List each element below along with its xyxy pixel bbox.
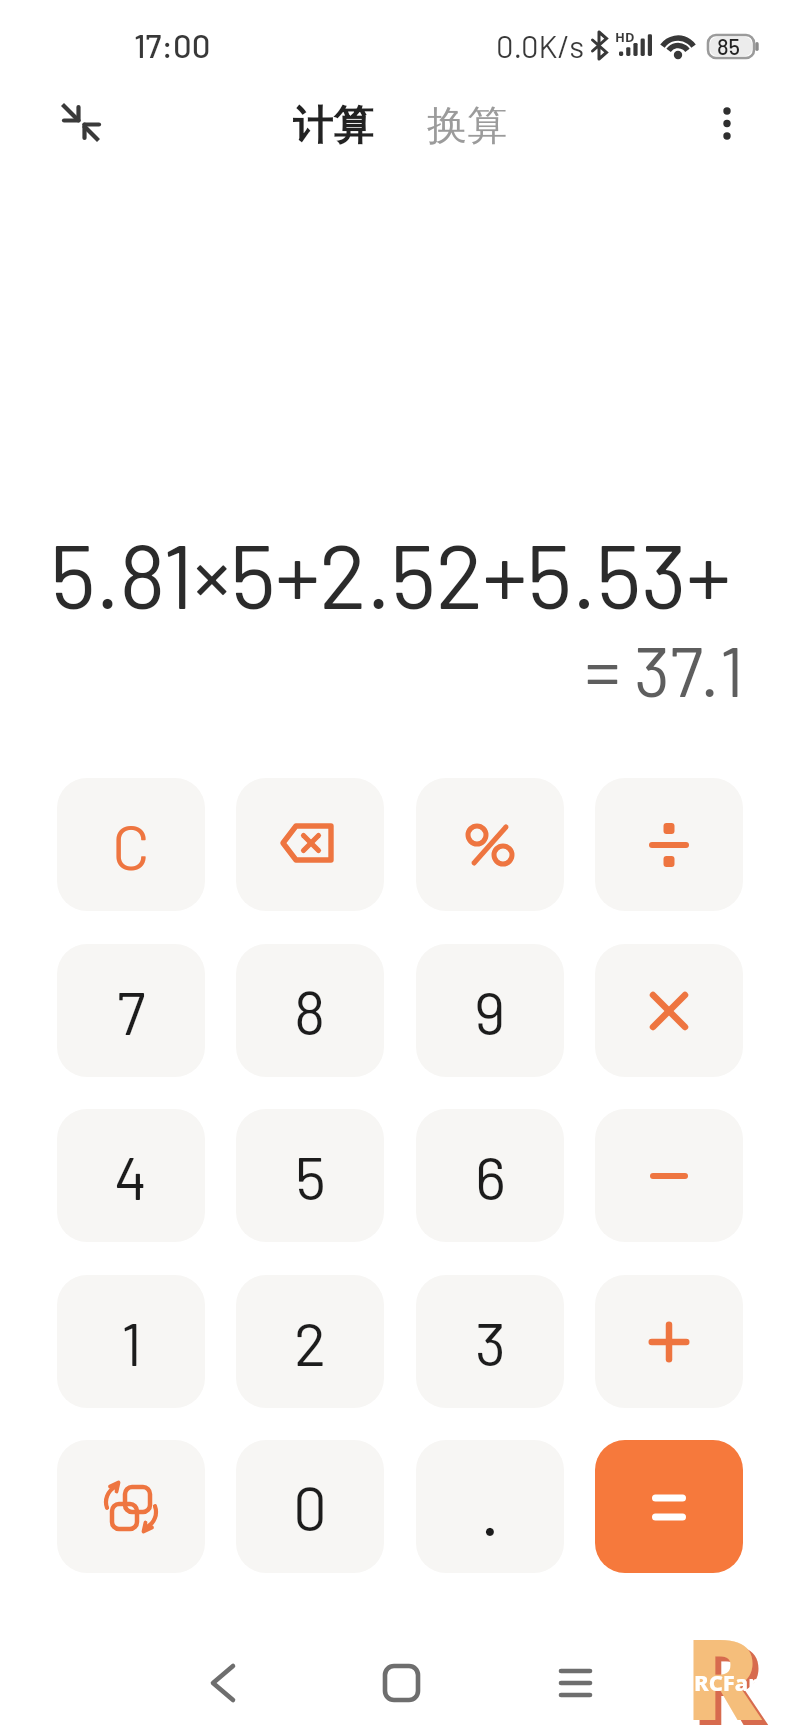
button[interactable] — [595, 1440, 743, 1573]
button[interactable]: 3 — [416, 1275, 564, 1408]
button[interactable]: 7 — [57, 944, 205, 1077]
button[interactable] — [595, 944, 743, 1077]
staticText: 1 — [121, 1306, 142, 1378]
button[interactable] — [50, 95, 110, 155]
button[interactable]: 0 — [236, 1440, 384, 1573]
button[interactable] — [705, 100, 750, 150]
button[interactable]: 8 — [236, 944, 384, 1077]
staticText: 8 — [294, 975, 326, 1047]
staticText: = 37.1 — [404, 627, 744, 717]
staticText: 0 — [293, 1471, 327, 1543]
button[interactable] — [360, 1653, 440, 1713]
staticText: RCFans — [694, 1667, 774, 1697]
staticText: 85 — [717, 33, 741, 59]
button[interactable]: 1 — [57, 1275, 205, 1408]
staticText: 7 — [117, 975, 146, 1047]
button[interactable]: 计算 — [293, 100, 373, 150]
staticText: 计算 — [293, 100, 373, 150]
staticText: 5 — [295, 1140, 326, 1212]
staticText: 4 — [114, 1140, 148, 1212]
staticText: HD — [615, 28, 635, 46]
staticText: R — [685, 1600, 761, 1733]
button[interactable]: 4 — [57, 1109, 205, 1242]
button[interactable]: 2 — [236, 1275, 384, 1408]
staticText: C — [112, 808, 150, 882]
staticText: 3 — [475, 1306, 506, 1378]
button[interactable] — [535, 1653, 615, 1713]
staticText: 17:00 — [134, 25, 211, 65]
staticText: 5.81×5+2.52+5.53+ — [50, 520, 731, 627]
staticText: 换算 — [427, 100, 507, 150]
button[interactable] — [236, 778, 384, 911]
staticText: 9 — [474, 975, 506, 1047]
button[interactable] — [183, 1653, 263, 1713]
button[interactable]: 6 — [416, 1109, 564, 1242]
button[interactable] — [595, 1109, 743, 1242]
staticText: R — [691, 1605, 767, 1733]
staticText: . — [480, 1464, 501, 1550]
staticText: 2 — [294, 1306, 327, 1378]
button[interactable]: 9 — [416, 944, 564, 1077]
staticText: 0.0K/s — [496, 27, 585, 64]
button[interactable]: 换算 — [427, 100, 507, 150]
button[interactable] — [57, 1440, 205, 1573]
button[interactable]: 5 — [236, 1109, 384, 1242]
button[interactable] — [595, 778, 743, 911]
button[interactable]: . — [416, 1440, 564, 1573]
button[interactable]: C — [57, 778, 205, 911]
staticText: 6 — [475, 1140, 506, 1212]
button[interactable] — [595, 1275, 743, 1408]
button[interactable] — [416, 778, 564, 911]
